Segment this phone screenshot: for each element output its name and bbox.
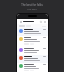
button[interactable] — [17, 36, 48, 47]
button[interactable]: Search — [39, 20, 42, 23]
button[interactable] — [17, 55, 48, 63]
button[interactable] — [17, 63, 48, 72]
button[interactable] — [17, 47, 48, 55]
button[interactable]: Profile — [43, 20, 46, 23]
button[interactable]: Menu — [19, 20, 22, 23]
button[interactable] — [17, 28, 48, 36]
staticText: The best for folks — [21, 3, 43, 7]
staticText: you want — [27, 8, 37, 11]
